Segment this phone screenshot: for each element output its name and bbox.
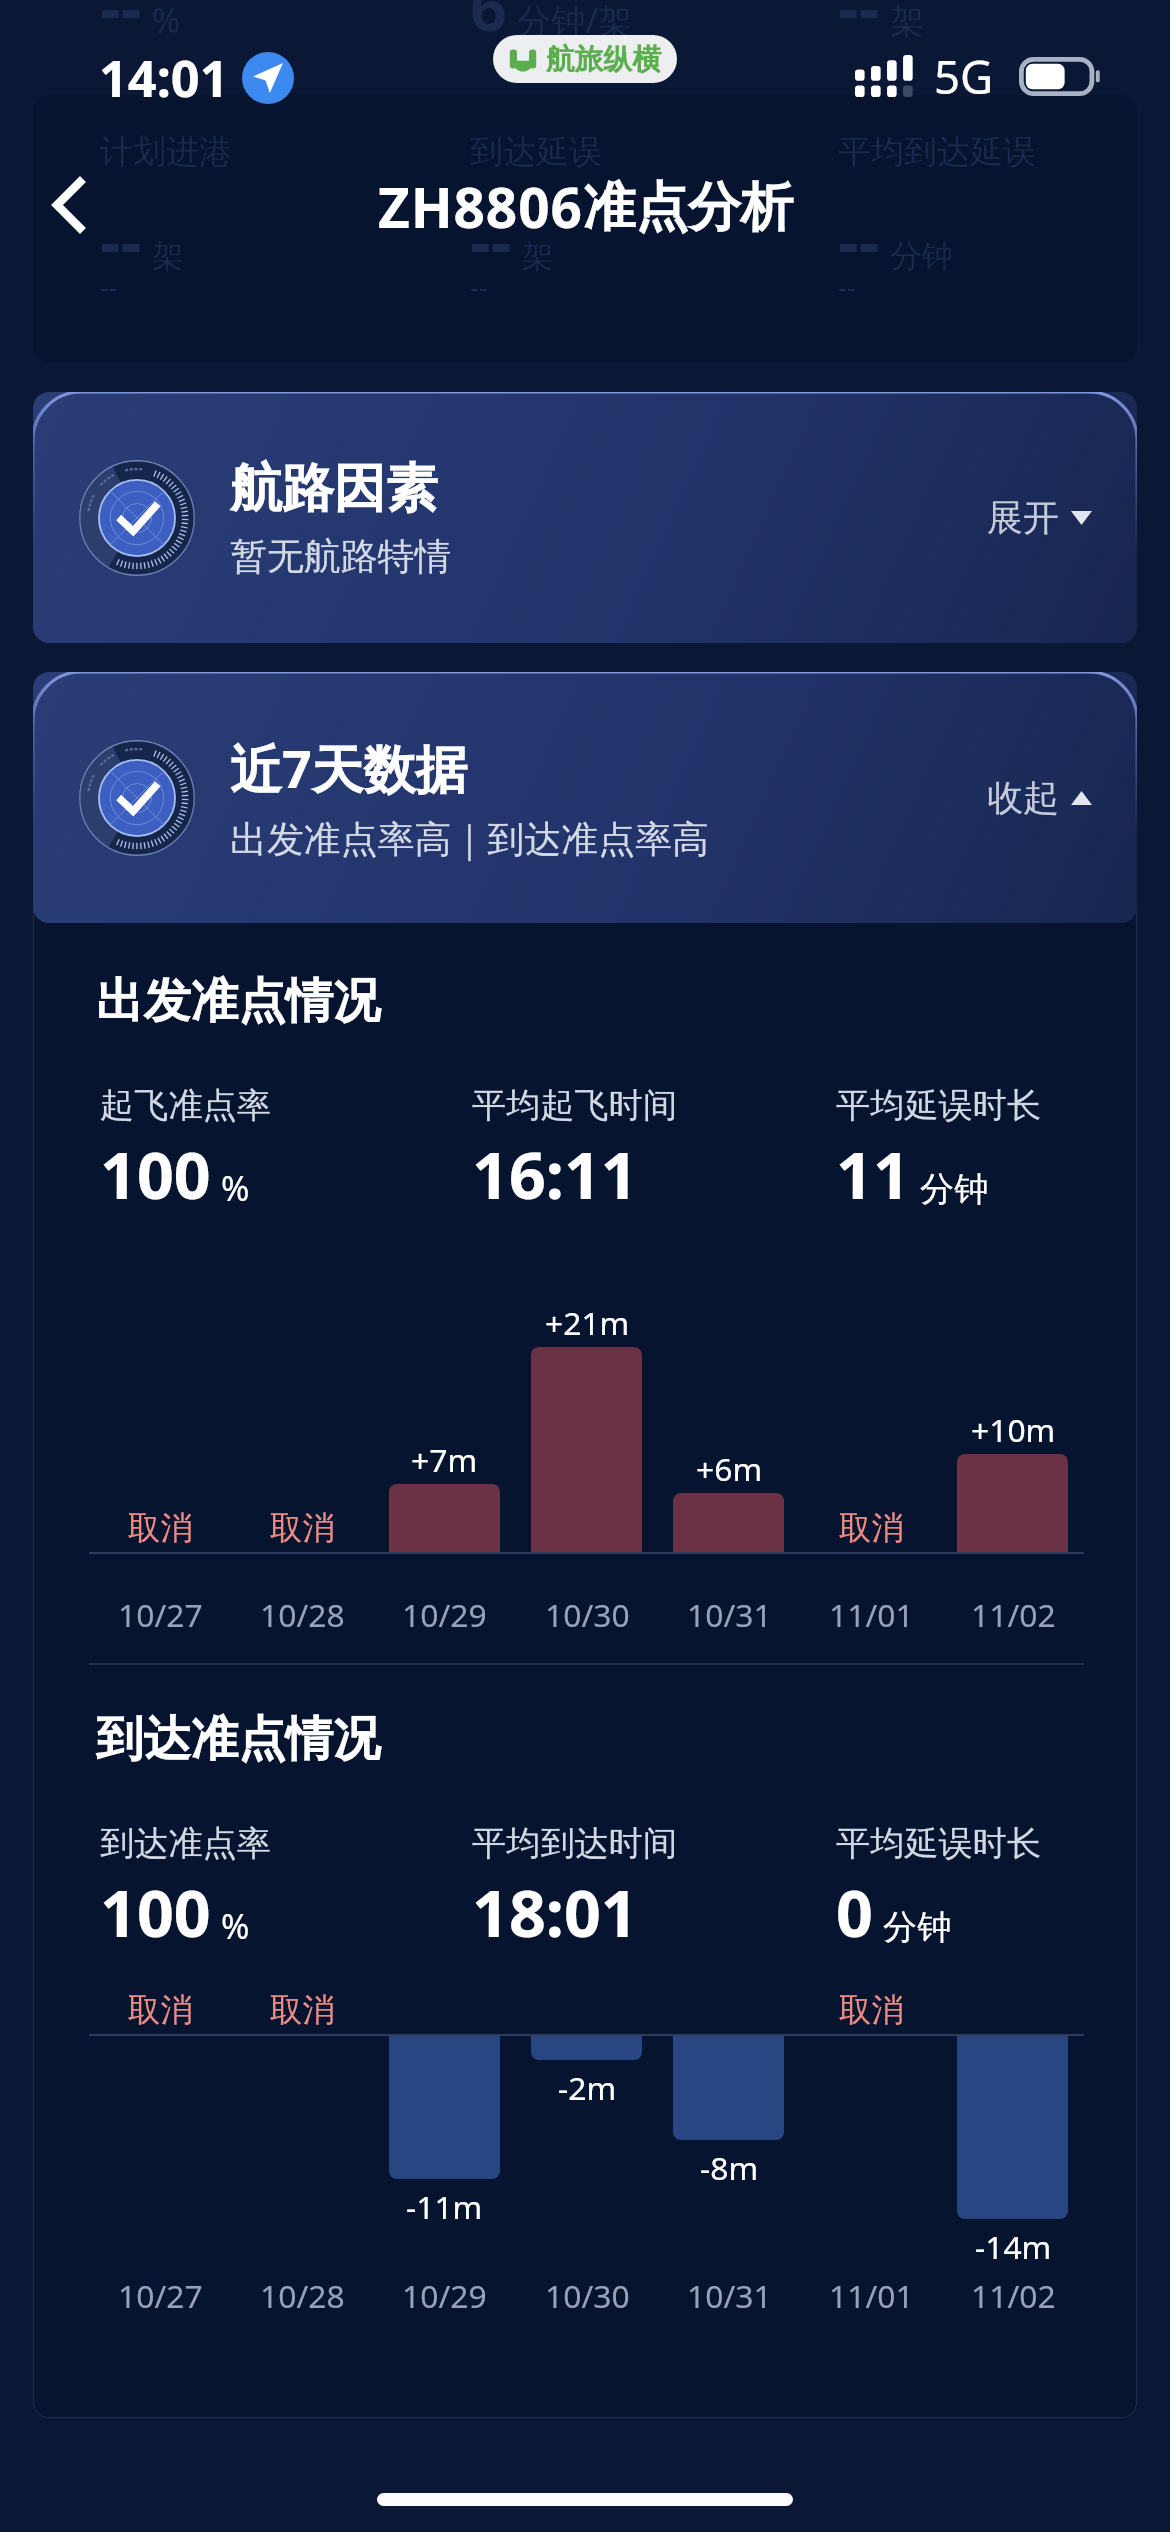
staticText: +6m [696, 1447, 763, 1490]
staticText: % [221, 1902, 250, 1949]
staticText: -2m [558, 2066, 617, 2109]
staticText: -- [838, 0, 880, 50]
staticText: 11/01 [829, 1593, 914, 1636]
staticText: 10/31 [687, 1593, 772, 1636]
staticText: 取消 [839, 1990, 904, 2031]
staticText: 10/29 [402, 1593, 487, 1636]
staticText: 10/30 [545, 1593, 630, 1636]
staticText: 10/31 [687, 2274, 772, 2317]
staticText: 取消 [270, 1990, 335, 2031]
staticText: 0 [836, 1868, 873, 1956]
staticText: 分钟/架 [517, 0, 633, 43]
staticText: -- [838, 268, 856, 305]
staticText: 5G [934, 45, 994, 107]
staticText: -- [470, 196, 512, 284]
staticText: +10m [971, 1408, 1056, 1451]
staticText: -- [100, 0, 142, 50]
staticText: +21m [545, 1301, 630, 1344]
staticText: 100 [100, 1868, 211, 1956]
staticText: -- [100, 196, 142, 284]
staticText: 航旅纵横 [546, 41, 662, 77]
staticText: 平均到达延误 [838, 131, 1036, 173]
staticText: 10/28 [260, 2274, 345, 2317]
staticText: 11 [836, 1130, 910, 1218]
staticText: -11m [406, 2185, 483, 2228]
button[interactable]: 收起 [966, 757, 1113, 838]
staticText: 计划进港 [100, 131, 232, 173]
staticText: -- [838, 196, 880, 284]
staticText: 起飞准点率 [100, 1084, 271, 1127]
staticText: 收起 [987, 775, 1059, 820]
staticText: 到达延误 [470, 131, 602, 173]
staticText: 10/27 [118, 1593, 203, 1636]
staticText: 近7天数据 [230, 733, 468, 804]
staticText: 10/29 [402, 2274, 487, 2317]
staticText: 100 [100, 1130, 211, 1218]
staticText: 到达准点率 [100, 1822, 271, 1865]
staticText: 准点分析 [583, 174, 793, 240]
staticText: 取消 [128, 1508, 193, 1549]
staticText: % [152, 0, 181, 43]
staticText: 11/02 [971, 2274, 1056, 2317]
staticText: 11/01 [829, 2274, 914, 2317]
staticText: 10/30 [545, 2274, 630, 2317]
staticText: 平均延误时长 [836, 1822, 1042, 1865]
staticText: 取消 [839, 1508, 904, 1549]
staticText: 展开 [987, 495, 1059, 540]
staticText: -- [470, 268, 488, 305]
staticText: 暂无航路特情 [230, 533, 452, 579]
staticText: 取消 [270, 1508, 335, 1549]
staticText: ZH8806 [378, 169, 583, 244]
staticText: 架 [522, 237, 554, 277]
staticText: 6 [470, 0, 507, 50]
staticText: 分钟 [920, 1168, 989, 1211]
button[interactable]: 展开 [966, 477, 1113, 558]
staticText: 平均到达时间 [472, 1822, 678, 1865]
staticText: +7m [411, 1438, 478, 1481]
staticText: 架 [152, 237, 184, 277]
staticText: 14:01 [99, 43, 229, 112]
staticText: 11/02 [971, 1593, 1056, 1636]
staticText: 10/28 [260, 1593, 345, 1636]
staticText: 分钟 [883, 1906, 952, 1949]
staticText: -- [100, 268, 118, 305]
staticText: 架 [890, 0, 925, 43]
button[interactable]: 近7天数据 [33, 672, 1137, 923]
staticText: -14m [975, 2225, 1052, 2268]
staticText: 航路因素 [230, 456, 438, 521]
staticText: 平均起飞时间 [472, 1084, 678, 1127]
staticText: 分钟 [890, 237, 953, 277]
staticText: 出发准点情况 [96, 971, 381, 1031]
staticText: 取消 [128, 1990, 193, 2031]
staticText: -8m [700, 2146, 759, 2189]
staticText: 16:11 [472, 1130, 638, 1218]
staticText: 10/27 [118, 2274, 203, 2317]
staticText: 出发准点率高｜到达准点率高 [230, 816, 709, 862]
staticText: 到达准点情况 [96, 1709, 381, 1769]
button[interactable]: Back [26, 150, 110, 260]
button[interactable]: 航路因素 [33, 392, 1137, 643]
staticText: % [221, 1164, 250, 1211]
staticText: 平均延误时长 [836, 1084, 1042, 1127]
staticText: 18:01 [472, 1868, 638, 1956]
